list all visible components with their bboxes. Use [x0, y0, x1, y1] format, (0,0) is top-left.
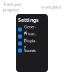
staticText: in one place — [41, 4, 61, 10]
staticText: Track your progress — [3, 2, 22, 12]
staticText: Settings — [18, 16, 39, 24]
staticText: Sounds — [24, 48, 36, 53]
staticText: Display — [24, 38, 36, 49]
staticText: Privacy — [24, 31, 36, 42]
staticText: General — [24, 24, 36, 35]
